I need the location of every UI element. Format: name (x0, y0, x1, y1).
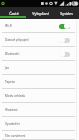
staticText: Systém (60, 11, 73, 16)
button[interactable]: Vypnuto (59, 37, 70, 43)
button[interactable]: Bluetooth (0, 47, 79, 61)
staticText: Wi-Fi (5, 24, 13, 28)
button[interactable]: Vylepšení (27, 7, 53, 19)
button[interactable]: Wi-Fi (0, 19, 79, 33)
button[interactable]: Hlasitost (0, 103, 79, 117)
button[interactable]: Vypnuto (59, 51, 70, 57)
staticText: Vyzvánění (5, 122, 20, 126)
staticText: Motiv vzhledu (5, 94, 26, 98)
button[interactable]: Vyzvánění (0, 117, 79, 131)
staticText: Tapeta (5, 80, 15, 84)
staticText: 16:35 (69, 1, 78, 6)
button[interactable]: Časté (0, 7, 27, 19)
button[interactable]: Motiv vzhledu (0, 89, 79, 103)
button[interactable]: Datové připojení (0, 33, 79, 47)
button[interactable]: Jas (0, 61, 79, 75)
button[interactable]: Zapnuto (59, 23, 70, 29)
button[interactable]: Systém (53, 7, 79, 19)
staticText: Datové připojení (5, 38, 30, 42)
staticText: Bluetooth (5, 52, 20, 56)
staticText: Časté (9, 11, 19, 16)
staticText: Jas (5, 66, 10, 70)
staticText: Vylepšení (32, 11, 49, 16)
staticText: Tón oznámení (5, 134, 26, 138)
button[interactable]: Tón oznámení (0, 131, 79, 140)
button[interactable]: Tapeta (0, 75, 79, 89)
staticText: Hlasitost (5, 108, 18, 112)
